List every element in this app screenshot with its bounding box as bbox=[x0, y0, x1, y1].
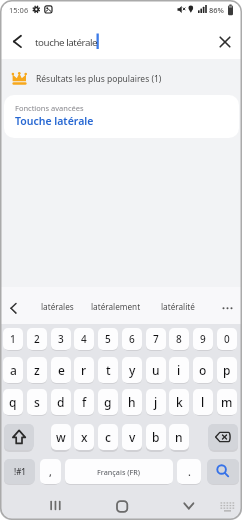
button[interactable]: n bbox=[169, 424, 189, 450]
staticText: w bbox=[56, 429, 66, 445]
staticText: , bbox=[49, 465, 52, 479]
staticText: h bbox=[128, 394, 136, 410]
button[interactable]: p bbox=[217, 357, 237, 383]
button[interactable]: k bbox=[169, 389, 189, 415]
button[interactable] bbox=[213, 29, 237, 53]
staticText: o bbox=[199, 362, 207, 378]
staticText: !#1 bbox=[14, 466, 26, 477]
staticText: 9 bbox=[200, 332, 206, 346]
staticText: d bbox=[57, 394, 65, 410]
staticText: touche latérale bbox=[35, 36, 98, 49]
button[interactable]: i bbox=[169, 357, 189, 383]
button[interactable] bbox=[0, 18, 242, 59]
staticText: 2 bbox=[34, 332, 40, 346]
button[interactable]: a bbox=[3, 357, 23, 383]
staticText: 0 bbox=[224, 332, 230, 346]
staticText: g bbox=[104, 394, 112, 410]
button[interactable] bbox=[212, 494, 238, 516]
staticText: f bbox=[82, 394, 87, 410]
staticText: s bbox=[34, 394, 40, 410]
staticText: z bbox=[34, 362, 40, 378]
button[interactable] bbox=[4, 295, 24, 317]
button[interactable]: w bbox=[51, 424, 71, 450]
button[interactable]: , bbox=[40, 459, 61, 484]
button[interactable]: 3 bbox=[51, 328, 71, 350]
staticText: m bbox=[221, 394, 233, 410]
button[interactable] bbox=[208, 424, 238, 450]
button[interactable]: e bbox=[51, 357, 71, 383]
button[interactable]: g bbox=[98, 389, 118, 415]
button[interactable] bbox=[207, 459, 239, 484]
button[interactable]: 8 bbox=[169, 328, 189, 350]
button[interactable] bbox=[214, 295, 238, 317]
staticText: a bbox=[10, 362, 17, 378]
button[interactable]: latéralité bbox=[144, 295, 212, 317]
button[interactable] bbox=[44, 494, 66, 516]
button[interactable]: z bbox=[27, 357, 47, 383]
staticText: Fonctions avancées bbox=[15, 103, 84, 113]
button[interactable]: Français (FR) bbox=[65, 459, 173, 484]
button[interactable]: l bbox=[193, 389, 213, 415]
staticText: c bbox=[105, 429, 111, 445]
button[interactable]: 7 bbox=[146, 328, 166, 350]
button[interactable]: f bbox=[74, 389, 94, 415]
staticText: 86% bbox=[209, 5, 224, 15]
staticText: 1 bbox=[10, 332, 16, 346]
button[interactable]: u bbox=[146, 357, 166, 383]
staticText: t bbox=[106, 362, 111, 378]
button[interactable]: r bbox=[74, 357, 94, 383]
staticText: 3 bbox=[58, 332, 64, 346]
button[interactable] bbox=[111, 494, 133, 516]
button[interactable]: y bbox=[122, 357, 142, 383]
staticText: j bbox=[154, 394, 158, 410]
button[interactable]: 9 bbox=[193, 328, 213, 350]
button[interactable]: 1 bbox=[3, 328, 23, 350]
button[interactable]: m bbox=[217, 389, 237, 415]
staticText: 8 bbox=[176, 332, 182, 346]
button[interactable]: h bbox=[122, 389, 142, 415]
staticText: . bbox=[188, 465, 191, 479]
button[interactable]: b bbox=[146, 424, 166, 450]
button[interactable]: d bbox=[51, 389, 71, 415]
staticText: e bbox=[58, 362, 65, 378]
button[interactable]: s bbox=[27, 389, 47, 415]
staticText: x bbox=[81, 429, 88, 445]
staticText: 15:06 bbox=[9, 5, 29, 15]
button[interactable]: latérales bbox=[23, 295, 91, 317]
button[interactable]: o bbox=[193, 357, 213, 383]
button[interactable]: t bbox=[98, 357, 118, 383]
staticText: i bbox=[177, 362, 181, 378]
button[interactable]: 2 bbox=[27, 328, 47, 350]
button[interactable]: q bbox=[3, 389, 23, 415]
button[interactable] bbox=[178, 494, 200, 516]
staticText: latérales bbox=[41, 301, 74, 312]
staticText: y bbox=[129, 362, 136, 378]
staticText: q bbox=[9, 394, 17, 410]
staticText: u bbox=[152, 362, 160, 378]
staticText: 5 bbox=[105, 332, 111, 346]
button[interactable]: latéralement bbox=[82, 295, 150, 317]
button[interactable]: 5 bbox=[98, 328, 118, 350]
button[interactable]: v bbox=[122, 424, 142, 450]
staticText: p bbox=[223, 362, 231, 378]
staticText: 6 bbox=[129, 332, 135, 346]
button[interactable] bbox=[4, 424, 34, 450]
button[interactable]: 4 bbox=[74, 328, 94, 350]
staticText: latéralité bbox=[161, 301, 195, 312]
staticText: l bbox=[201, 394, 205, 410]
staticText: Touche latérale bbox=[15, 114, 94, 128]
button[interactable] bbox=[8, 29, 32, 53]
staticText: r bbox=[81, 362, 87, 378]
staticText: k bbox=[176, 394, 183, 410]
button[interactable]: Fonctions avancées bbox=[4, 95, 239, 138]
button[interactable]: 0 bbox=[217, 328, 237, 350]
button[interactable]: 6 bbox=[122, 328, 142, 350]
staticText: Français (FR) bbox=[97, 467, 141, 477]
staticText: v bbox=[129, 429, 136, 445]
button[interactable]: j bbox=[146, 389, 166, 415]
button[interactable]: x bbox=[74, 424, 94, 450]
button[interactable]: !#1 bbox=[4, 459, 35, 484]
button[interactable]: . bbox=[177, 459, 201, 484]
staticText: Résultats les plus populaires (1) bbox=[36, 73, 162, 85]
button[interactable]: c bbox=[98, 424, 118, 450]
